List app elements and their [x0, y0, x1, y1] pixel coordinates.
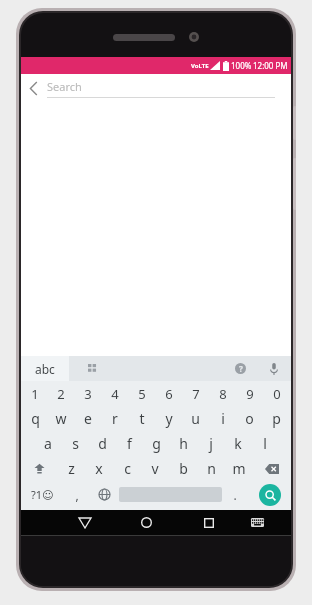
- button[interactable]: abc: [21, 356, 69, 381]
- button[interactable]: k: [224, 431, 251, 456]
- button[interactable]: Backspace: [253, 456, 291, 481]
- button[interactable]: Recent apps: [189, 510, 228, 535]
- button[interactable]: t: [128, 406, 155, 431]
- staticText: b: [179, 459, 188, 478]
- staticText: y: [165, 409, 173, 428]
- button[interactable]: 7: [182, 381, 209, 406]
- button[interactable]: Home: [127, 510, 166, 535]
- staticText: 12:00 PM: [253, 60, 288, 71]
- staticText: 2: [57, 385, 65, 403]
- staticText: f: [127, 434, 132, 453]
- button[interactable]: 2: [48, 381, 74, 406]
- button[interactable]: 8: [209, 381, 236, 406]
- button[interactable]: Back: [21, 74, 47, 102]
- staticText: 7: [192, 385, 200, 403]
- staticText: abc: [35, 361, 55, 377]
- staticText: 100%: [231, 60, 252, 71]
- button[interactable]: u: [182, 406, 209, 431]
- staticText: v: [151, 459, 159, 478]
- staticText: x: [95, 459, 103, 478]
- button[interactable]: Back: [65, 510, 104, 535]
- button[interactable]: 1: [22, 381, 48, 406]
- staticText: e: [84, 409, 92, 428]
- staticText: p: [272, 409, 281, 428]
- staticText: 4: [111, 385, 119, 403]
- staticText: VoLTE: [191, 62, 209, 70]
- button[interactable]: x: [85, 456, 113, 481]
- staticText: .: [233, 487, 237, 503]
- button[interactable]: s: [62, 431, 89, 456]
- staticText: o: [245, 409, 254, 428]
- staticText: c: [124, 459, 131, 478]
- button[interactable]: v: [141, 456, 169, 481]
- staticText: l: [263, 434, 267, 453]
- staticText: k: [234, 434, 242, 453]
- button[interactable]: Search: [47, 79, 275, 98]
- staticText: t: [139, 409, 145, 428]
- button[interactable]: q: [22, 406, 48, 431]
- button[interactable]: c: [113, 456, 141, 481]
- button[interactable]: Voice input: [257, 356, 291, 381]
- button[interactable]: ?1☺: [21, 481, 64, 508]
- button[interactable]: g: [143, 431, 170, 456]
- button[interactable]: 5: [128, 381, 155, 406]
- staticText: Search: [47, 79, 82, 94]
- button[interactable]: Switch keyboard: [238, 510, 277, 535]
- staticText: s: [72, 434, 79, 453]
- button[interactable]: p: [263, 406, 290, 431]
- button[interactable]: f: [116, 431, 143, 456]
- button[interactable]: e: [74, 406, 101, 431]
- button[interactable]: r: [101, 406, 128, 431]
- staticText: 8: [219, 385, 227, 403]
- staticText: r: [112, 409, 118, 428]
- staticText: 6: [165, 385, 173, 403]
- button[interactable]: Change language: [90, 481, 119, 508]
- button[interactable]: l: [251, 431, 278, 456]
- button[interactable]: d: [89, 431, 116, 456]
- staticText: z: [68, 459, 75, 478]
- staticText: 5: [138, 385, 146, 403]
- staticText: a: [44, 434, 52, 453]
- button[interactable]: j: [197, 431, 224, 456]
- button[interactable]: b: [169, 456, 197, 481]
- button[interactable]: z: [58, 456, 85, 481]
- button[interactable]: Sticker: [69, 356, 115, 381]
- button[interactable]: a: [34, 431, 62, 456]
- staticText: g: [152, 434, 161, 453]
- button[interactable]: w: [48, 406, 74, 431]
- button[interactable]: 0: [263, 381, 290, 406]
- button[interactable]: Shift: [21, 456, 58, 481]
- button[interactable]: .: [222, 481, 248, 508]
- staticText: 0: [273, 385, 281, 403]
- button[interactable]: m: [225, 456, 253, 481]
- staticText: d: [98, 434, 107, 453]
- button[interactable]: 6: [155, 381, 182, 406]
- staticText: 9: [246, 385, 254, 403]
- staticText: ?: [239, 363, 243, 374]
- staticText: q: [31, 409, 40, 428]
- button[interactable]: h: [170, 431, 197, 456]
- staticText: 1: [31, 385, 39, 403]
- button[interactable]: ,: [64, 481, 90, 508]
- button[interactable]: y: [155, 406, 182, 431]
- button[interactable]: i: [209, 406, 236, 431]
- staticText: w: [55, 409, 67, 428]
- staticText: 3: [84, 385, 92, 403]
- button[interactable]: n: [197, 456, 225, 481]
- staticText: j: [209, 434, 213, 453]
- staticText: ,: [75, 487, 79, 503]
- button[interactable]: 3: [74, 381, 101, 406]
- staticText: n: [207, 459, 216, 478]
- staticText: m: [232, 459, 246, 478]
- button[interactable]: Search: [259, 484, 281, 506]
- button[interactable]: o: [236, 406, 263, 431]
- staticText: i: [221, 409, 225, 428]
- staticText: h: [179, 434, 188, 453]
- button[interactable]: 9: [236, 381, 263, 406]
- staticText: ?1☺: [31, 487, 54, 502]
- staticText: u: [191, 409, 200, 428]
- button[interactable]: 4: [101, 381, 128, 406]
- button[interactable]: Help: [223, 356, 257, 381]
